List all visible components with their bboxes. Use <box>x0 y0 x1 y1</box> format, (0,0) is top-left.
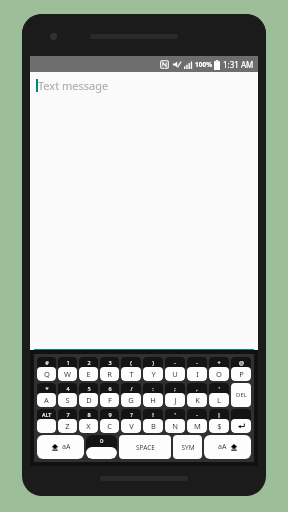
staticText: X <box>86 421 91 431</box>
staticText: B <box>151 421 156 431</box>
staticText: 1:31 AM <box>223 59 254 70</box>
button[interactable]: 8 <box>79 409 98 433</box>
staticText: G <box>128 395 134 405</box>
button[interactable]: 2 <box>79 357 98 381</box>
staticText: : <box>152 385 154 392</box>
staticText: Text message <box>38 78 109 93</box>
button[interactable]: SYM <box>173 435 202 459</box>
staticText: | <box>217 411 221 418</box>
staticText: 7 <box>66 411 70 418</box>
button[interactable]: ' <box>165 409 185 433</box>
staticText: ) <box>152 359 154 366</box>
staticText: P <box>239 369 244 379</box>
staticText: 8 <box>87 411 91 418</box>
button[interactable]: | <box>209 409 229 433</box>
staticText: * <box>45 385 49 392</box>
button[interactable]: Shift <box>204 435 251 459</box>
button[interactable]: # <box>37 357 56 381</box>
staticText: # <box>45 359 49 366</box>
staticText: D <box>86 395 92 405</box>
button[interactable]: 3 <box>100 357 119 381</box>
staticText: 6 <box>108 385 112 392</box>
staticText: L <box>217 395 221 405</box>
staticText: 100% <box>195 60 213 69</box>
button[interactable]: - <box>165 357 185 381</box>
button[interactable]: DEL <box>231 383 251 407</box>
button[interactable]: / <box>121 383 141 407</box>
button[interactable]: SPACE <box>119 435 171 459</box>
button[interactable]: ? <box>121 409 141 433</box>
staticText: ; <box>174 385 176 392</box>
button[interactable]: : <box>143 383 163 407</box>
staticText: SYM <box>181 443 195 452</box>
staticText: ( <box>130 359 132 366</box>
staticText: @ <box>239 359 244 366</box>
button[interactable]: 6 <box>100 383 119 407</box>
staticText: , <box>196 385 198 392</box>
staticText: ' <box>218 385 220 392</box>
staticText: - <box>196 359 198 366</box>
staticText: N <box>172 421 178 431</box>
staticText: M <box>194 421 201 431</box>
staticText: 4 <box>66 385 70 392</box>
button[interactable]: , <box>187 383 207 407</box>
button[interactable]: Text message <box>36 78 258 93</box>
staticText: U <box>172 369 178 379</box>
button[interactable]: - <box>187 409 207 433</box>
staticText: - <box>196 411 198 418</box>
staticText: 0 <box>100 437 104 445</box>
staticText: 5 <box>87 385 91 392</box>
button[interactable]: ( <box>121 357 141 381</box>
button[interactable]: 4 <box>58 383 77 407</box>
staticText: 2 <box>87 359 91 366</box>
button[interactable]: @ <box>231 357 251 381</box>
staticText: T <box>129 369 134 379</box>
staticText: J <box>174 395 177 405</box>
staticText: ! <box>152 411 154 418</box>
staticText: H <box>150 395 156 405</box>
button[interactable]: ! <box>143 409 163 433</box>
staticText: O <box>216 369 222 379</box>
staticText: Y <box>151 369 156 379</box>
staticText: I <box>196 369 199 379</box>
staticText: R <box>107 369 112 379</box>
button[interactable]: 7 <box>58 409 77 433</box>
button[interactable]: Enter <box>231 409 251 433</box>
staticText: Z <box>65 421 70 431</box>
staticText: 9 <box>108 411 112 418</box>
staticText: K <box>195 395 200 405</box>
staticText: A <box>44 395 49 405</box>
staticText: 1 <box>66 359 70 366</box>
staticText: + <box>217 359 221 366</box>
button[interactable]: + <box>209 357 229 381</box>
staticText: / <box>130 385 133 392</box>
staticText: 3 <box>108 359 112 366</box>
button[interactable]: 9 <box>100 409 119 433</box>
staticText: - <box>174 359 176 366</box>
button[interactable]: ; <box>165 383 185 407</box>
staticText: W <box>64 369 71 379</box>
staticText: E <box>86 369 91 379</box>
staticText: ALT <box>42 411 52 418</box>
staticText: aA <box>62 442 71 452</box>
staticText: ' <box>174 411 176 418</box>
button[interactable]: 1 <box>58 357 77 381</box>
button[interactable]: 5 <box>79 383 98 407</box>
staticText: DEL <box>236 391 247 399</box>
staticText: Q <box>44 369 50 379</box>
staticText: C <box>107 421 112 431</box>
staticText: ? <box>130 411 133 418</box>
button[interactable]: ) <box>143 357 163 381</box>
button[interactable]: ALT <box>37 409 56 433</box>
staticText: $ <box>217 421 222 431</box>
button[interactable]: * <box>37 383 56 407</box>
button[interactable]: ' <box>209 383 229 407</box>
staticText: V <box>129 421 134 431</box>
staticText: aA <box>218 442 227 452</box>
staticText: F <box>108 395 112 405</box>
button[interactable]: - <box>187 357 207 381</box>
button[interactable]: 0 <box>86 435 117 459</box>
staticText: S <box>65 395 70 405</box>
button[interactable]: Shift <box>37 435 84 459</box>
staticText: SPACE <box>136 443 155 452</box>
